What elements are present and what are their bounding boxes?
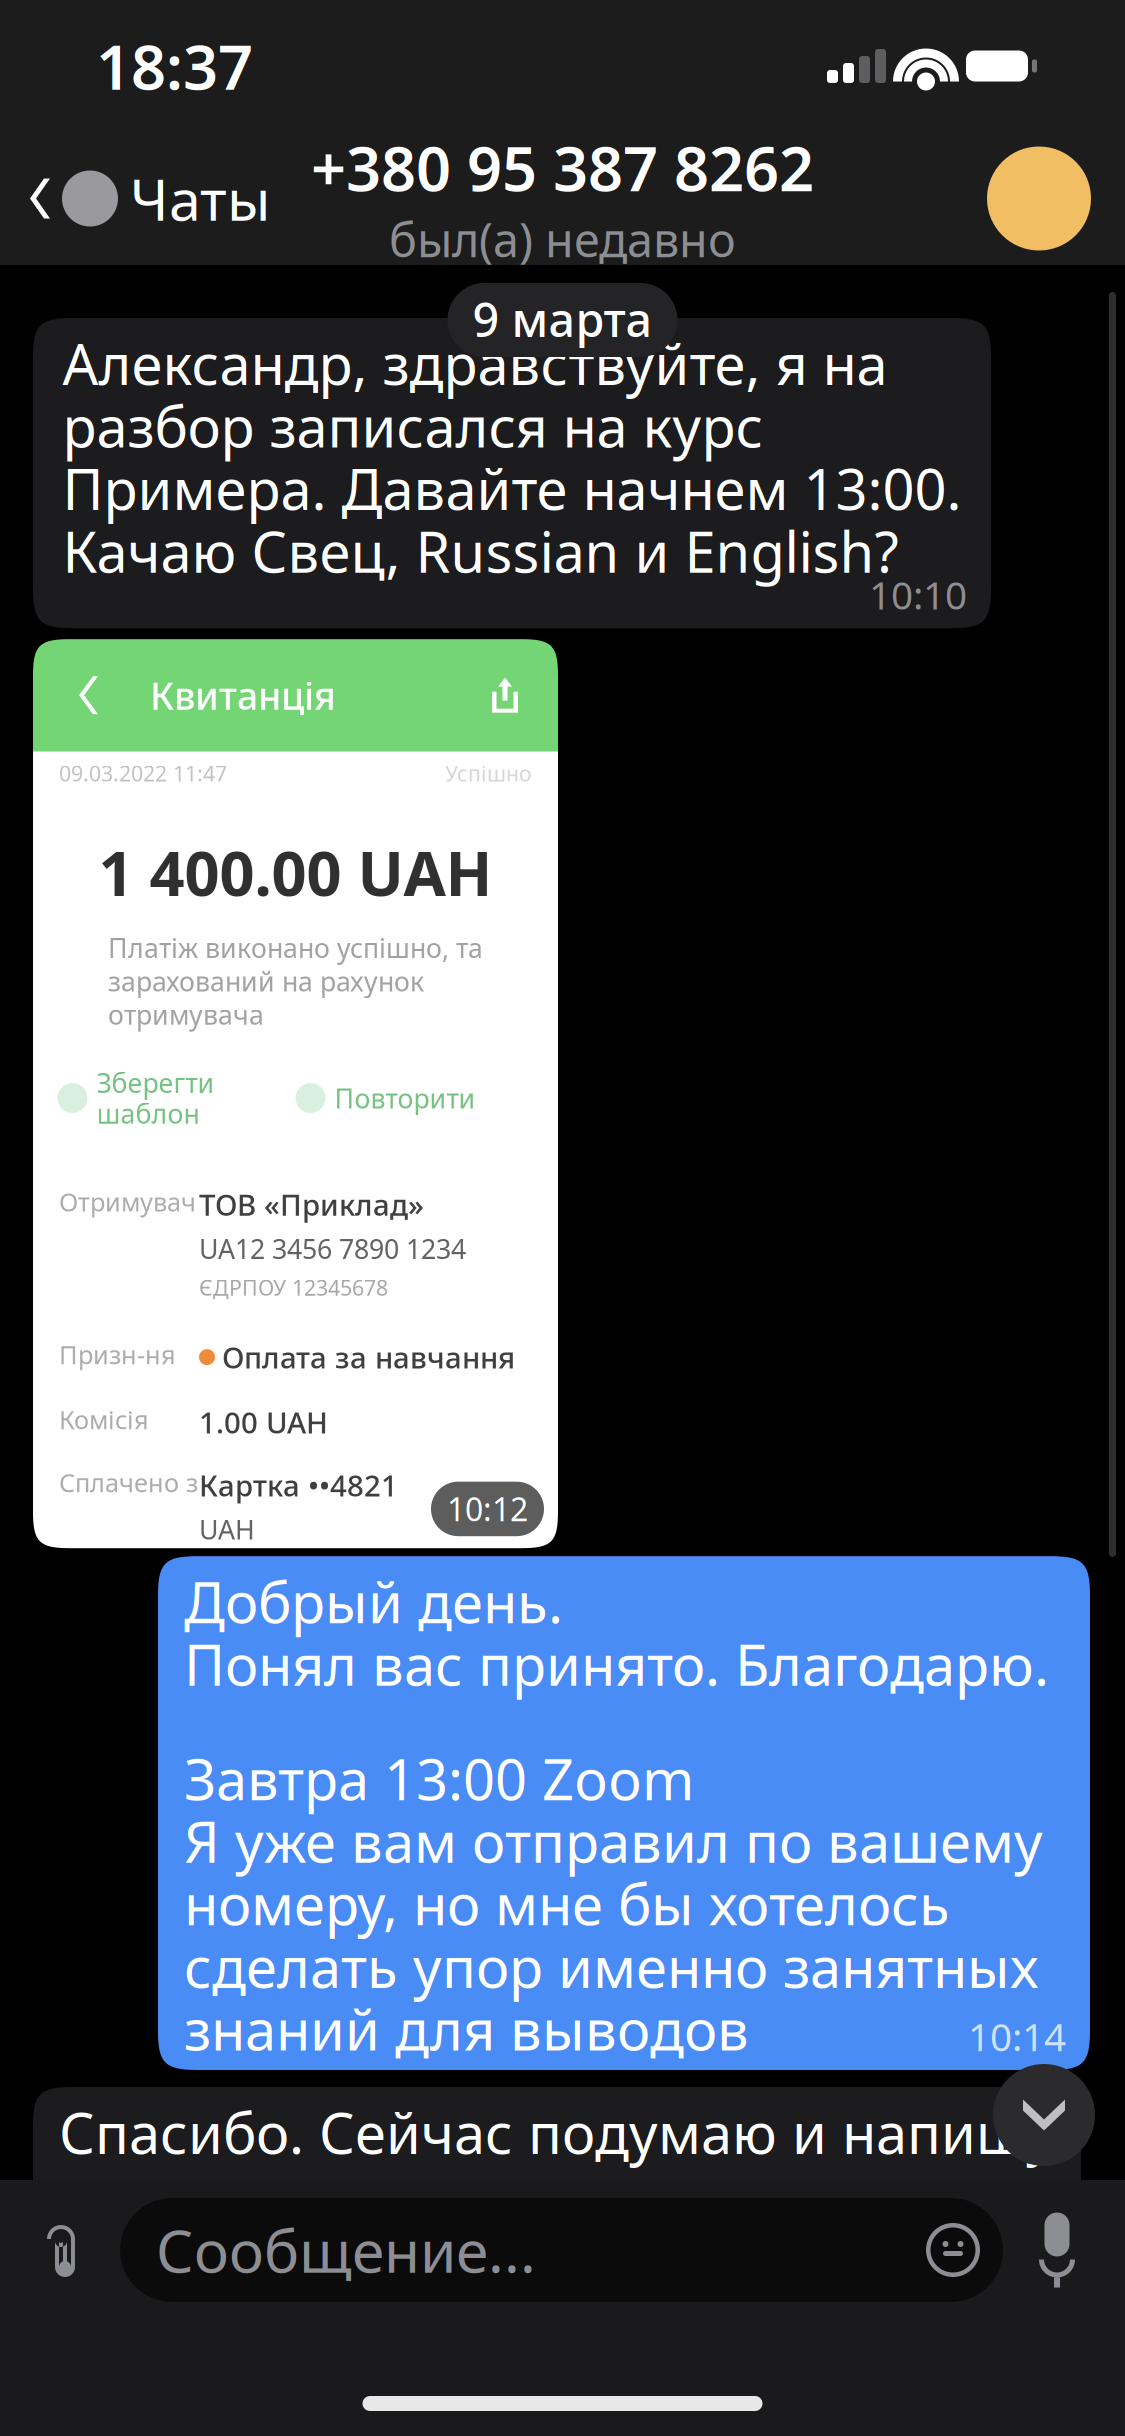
staticText: Призн-ня	[59, 1338, 176, 1371]
staticText: Успішно	[445, 759, 532, 787]
button[interactable]: Чаты	[0, 132, 289, 265]
staticText: 1.00 UAH	[199, 1403, 328, 1442]
staticText: Завтра 13:00 Zoom	[184, 1747, 694, 1810]
button[interactable]: Attach file	[0, 2194, 100, 2306]
staticText: Добрый день.	[184, 1570, 563, 1633]
staticText: Отримувач	[59, 1185, 196, 1218]
staticText: Повторити	[334, 1083, 475, 1113]
staticText: Спасибо. Сейчас подумаю и напишу	[59, 2101, 1055, 2163]
staticText: 10:12	[447, 1488, 528, 1530]
staticText: UA12 3456 7890 1234	[199, 1231, 466, 1266]
staticText: Сообщение...	[156, 2211, 536, 2289]
staticText: 9 марта	[472, 288, 652, 350]
button[interactable]: Profile photo	[967, 132, 1125, 265]
staticText: 18:37	[96, 25, 253, 107]
staticText: 10:10	[869, 569, 967, 620]
button[interactable]: Record voice message	[1027, 2194, 1125, 2306]
staticText: +380 95 387 8262	[311, 127, 814, 208]
staticText: 09.03.2022 11:47	[59, 759, 227, 787]
staticText: ТОВ «Приклад»	[199, 1185, 424, 1224]
staticText: Сплачено з	[59, 1466, 198, 1499]
staticText: Картка ••4821	[199, 1466, 398, 1505]
staticText: Александр, здравствуйте, я на разбор зап…	[62, 332, 961, 582]
staticText: Оплата за навчання	[222, 1338, 515, 1377]
staticText: Чаты	[130, 160, 271, 236]
button[interactable]: Scroll to latest message	[993, 2064, 1095, 2166]
staticText: 1 400.00 UAH	[98, 831, 492, 913]
staticText: Зберегти шаблон	[96, 1067, 214, 1129]
staticText: UAH	[199, 1511, 255, 1547]
staticText: Понял вас принято. Благодарю.	[184, 1633, 1049, 1695]
staticText: ЄДРПОУ 12345678	[199, 1273, 388, 1302]
staticText: Комісія	[59, 1403, 149, 1436]
staticText: был(а) недавно	[389, 208, 736, 270]
staticText: Платіж виконано успішно, та зарахований …	[108, 931, 483, 1031]
staticText: 10:14	[968, 2011, 1066, 2062]
staticText: Квитанція	[150, 670, 336, 720]
staticText: Я уже вам отправил по вашему номеру, но …	[184, 1810, 1043, 2060]
